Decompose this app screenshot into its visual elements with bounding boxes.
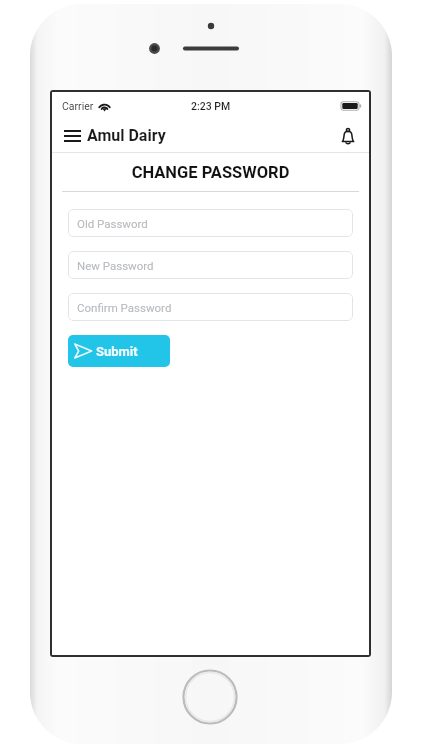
staticText: Old Password — [77, 217, 148, 230]
button[interactable]: Notifications — [333, 121, 363, 151]
staticText: 2:23 PM — [191, 100, 231, 112]
button[interactable]: Old Password — [68, 209, 353, 237]
staticText: Amul Dairy — [87, 126, 166, 145]
staticText: Carrier — [62, 100, 94, 112]
button[interactable]: New Password — [68, 251, 353, 279]
staticText: Confirm Password — [77, 301, 172, 314]
staticText: CHANGE PASSWORD — [52, 163, 369, 182]
staticText: Submit — [96, 344, 138, 359]
button[interactable]: Confirm Password — [68, 293, 353, 321]
button[interactable]: Submit — [68, 335, 170, 367]
button[interactable]: Menu — [58, 122, 86, 150]
staticText: New Password — [77, 259, 154, 272]
